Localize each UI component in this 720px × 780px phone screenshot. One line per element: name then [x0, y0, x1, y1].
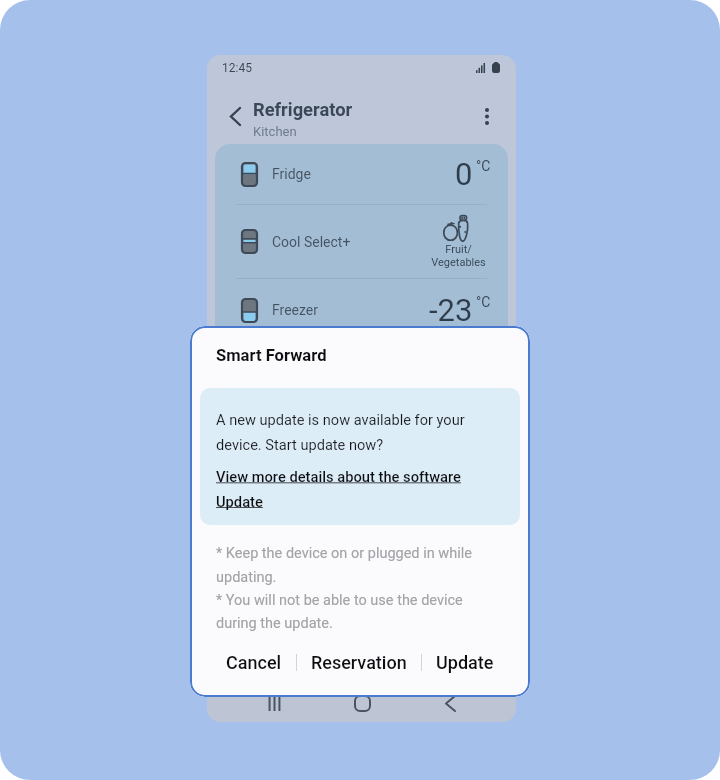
button[interactable]: Back	[428, 685, 472, 722]
button[interactable]: More options	[472, 101, 502, 131]
staticText: Cancel	[226, 652, 282, 673]
staticText: Refrigerator	[253, 99, 353, 120]
button[interactable]: Update	[422, 642, 508, 683]
staticText: * Keep the device on or plugged in while…	[216, 545, 490, 631]
button[interactable]: Recents	[252, 685, 296, 722]
staticText: Fridge	[272, 166, 311, 182]
staticText: -23	[429, 292, 473, 328]
staticText: Reservation	[311, 652, 407, 673]
button[interactable]: Cancel	[212, 642, 296, 683]
staticText: Update	[436, 652, 494, 673]
staticText: Fruit/ Vegetables	[431, 243, 486, 269]
button[interactable]: Fridge	[215, 144, 508, 204]
staticText: Kitchen	[253, 124, 297, 139]
button[interactable]: Reservation	[297, 642, 421, 683]
staticText: Freezer	[272, 302, 319, 318]
button[interactable]: View more details about the software Upd…	[216, 468, 506, 510]
button[interactable]: Home	[340, 685, 384, 722]
staticText: 12:45	[222, 61, 252, 75]
button[interactable]: Freezer	[215, 279, 508, 341]
button[interactable]: Cool Select+	[215, 205, 508, 278]
staticText: Cool Select+	[272, 234, 351, 250]
staticText: A new update is now available for your d…	[216, 411, 506, 453]
button[interactable]: Back	[219, 100, 251, 132]
staticText: °C	[476, 294, 491, 310]
staticText: °C	[476, 158, 491, 174]
staticText: Smart Forward	[216, 346, 327, 365]
staticText: 0	[455, 156, 473, 192]
